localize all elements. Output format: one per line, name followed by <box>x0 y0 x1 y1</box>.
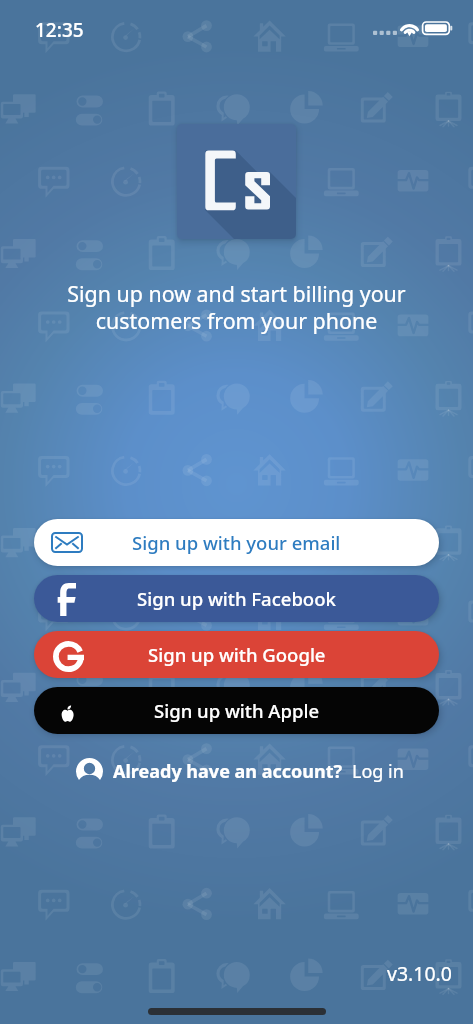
staticText: Sign up now and start billing your custo… <box>40 279 433 335</box>
staticText: Already have an account? <box>113 759 343 784</box>
button[interactable]: Sign up with Facebook <box>34 575 439 622</box>
staticText: Sign up with Apple <box>154 698 320 723</box>
button[interactable]: Sign up with Apple <box>34 687 439 734</box>
button[interactable]: Already have an account? <box>74 758 406 785</box>
staticText: 12:35 <box>35 17 84 43</box>
staticText: v3.10.0 <box>387 960 452 987</box>
button[interactable]: Sign up with your email <box>34 519 439 566</box>
staticText: Sign up with your email <box>132 530 341 555</box>
button[interactable]: Sign up with Google <box>34 631 439 678</box>
staticText: Sign up with Google <box>148 642 326 667</box>
staticText: Log in <box>352 759 404 784</box>
staticText: Sign up with Facebook <box>137 586 336 611</box>
